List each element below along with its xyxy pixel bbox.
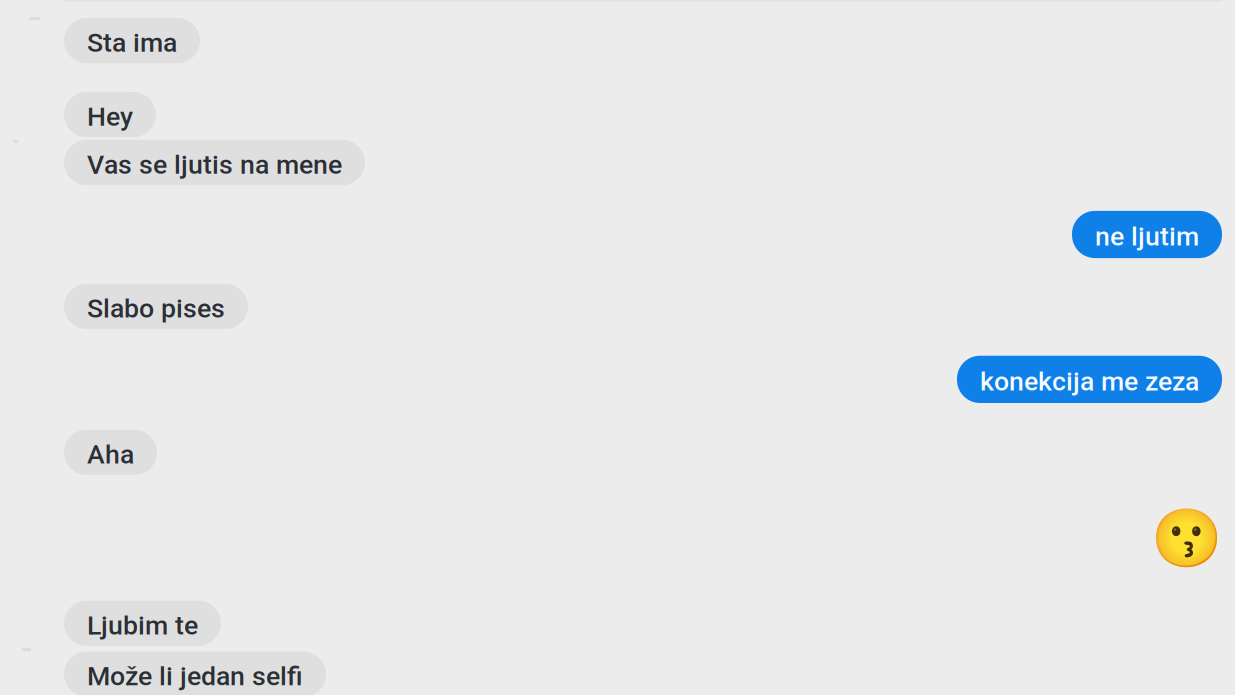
button[interactable]: Hey (64, 92, 156, 137)
button[interactable]: Slabo pises (64, 284, 248, 329)
button[interactable]: ne ljutim (1072, 211, 1222, 258)
button[interactable]: Ljubim te (64, 601, 221, 646)
staticText: 😗 (1151, 504, 1222, 572)
staticText: ne ljutim (1095, 221, 1199, 252)
button[interactable]: Može li jedan selfi (64, 652, 326, 695)
staticText: Slabo pises (87, 293, 225, 324)
staticText: konekcija me zeza (980, 366, 1199, 397)
button[interactable]: Vas se ljutis na mene (64, 140, 365, 185)
staticText: Sta ima (87, 27, 177, 58)
button[interactable]: Kissing face emoji message (1151, 504, 1222, 572)
staticText: Hey (87, 101, 133, 132)
staticText: Može li jedan selfi (87, 661, 303, 692)
button[interactable]: konekcija me zeza (957, 356, 1222, 403)
button[interactable]: Sta ima (64, 18, 200, 63)
button[interactable]: Aha (64, 430, 157, 475)
staticText: Vas se ljutis na mene (87, 149, 342, 180)
staticText: Ljubim te (87, 610, 198, 641)
staticText: Aha (87, 439, 134, 470)
